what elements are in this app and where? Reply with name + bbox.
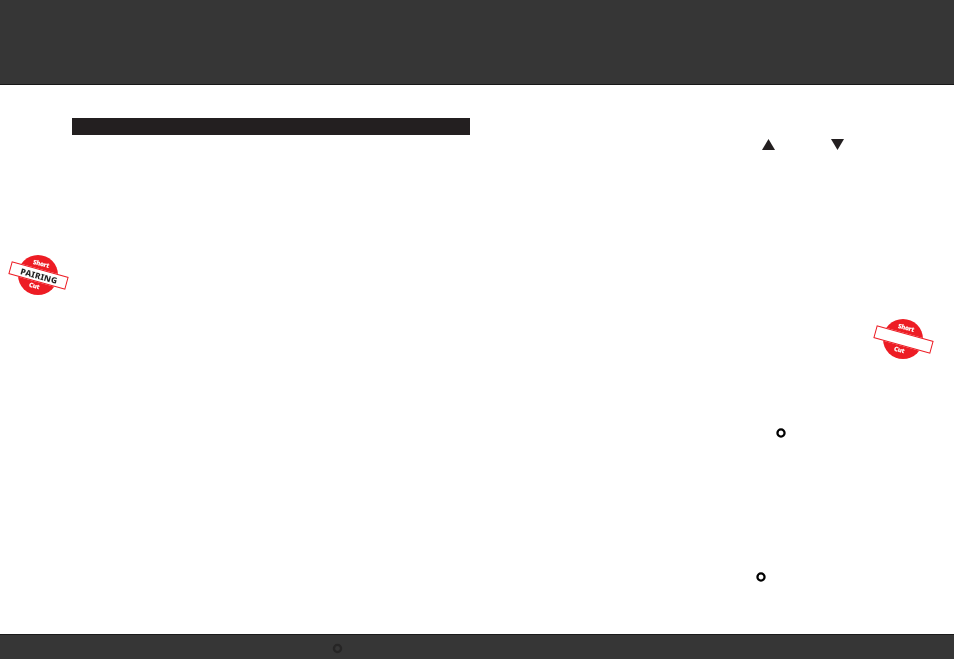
- staticText: Cut: [28, 281, 41, 291]
- staticText: Cut: [893, 345, 906, 355]
- button[interactable]: Bullet marker: [776, 428, 786, 438]
- button[interactable]: Sort ascending: [762, 139, 775, 150]
- staticText: PAIRING: [19, 265, 59, 287]
- button[interactable]: Bullet marker: [756, 572, 766, 582]
- staticText: Short: [32, 258, 51, 270]
- button[interactable]: Home: [332, 643, 343, 654]
- button[interactable]: Short Cut stamp: [865, 315, 941, 363]
- button[interactable]: Short Cut pairing stamp: [0, 251, 76, 299]
- button[interactable]: Sort descending: [831, 139, 844, 150]
- staticText: Short: [897, 322, 916, 334]
